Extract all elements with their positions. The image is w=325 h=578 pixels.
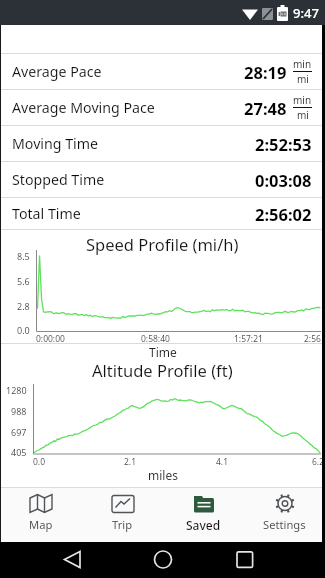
button[interactable] [109,542,217,578]
staticText: 4.1 [216,456,229,468]
staticText: 27:48 [244,97,287,119]
staticText: 2:56:02 [255,203,312,225]
staticText: Time [149,344,177,357]
staticText: 2:56 [304,333,321,345]
staticText: 8.5 [17,250,30,262]
staticText: 0:58:40 [141,333,170,345]
staticText: Moving Time [12,134,99,153]
staticText: 988 [11,405,27,417]
button[interactable]: Moving Time [0,126,325,161]
staticText: Map [29,517,53,532]
staticText: 5.6 [17,275,30,287]
staticText: Average Pace [12,62,102,81]
staticText: 0.0 [17,324,30,336]
button[interactable]: Settings [244,488,325,542]
staticText: Trip [112,517,133,532]
staticText: Speed Profile (mi/h) [86,233,239,255]
button[interactable]: Average Moving Pace [0,90,325,125]
staticText: mi [297,72,309,86]
button[interactable] [0,542,109,578]
button[interactable]: Average Pace [0,54,325,89]
button[interactable]: Map [0,488,82,542]
staticText: 6.2 [312,456,325,468]
staticText: 405 [11,446,27,458]
staticText: 1:57:21 [234,333,263,345]
staticText: 2.8 [17,300,30,312]
button[interactable]: Saved [163,488,244,542]
staticText: Altitude Profile (ft) [92,359,233,381]
staticText: 2.1 [124,456,137,468]
staticText: 2:52:53 [255,133,312,155]
button[interactable] [217,542,325,578]
staticText: 1280 [6,384,27,396]
button[interactable]: Stopped Time [0,162,325,197]
button[interactable]: Total Time [0,198,325,229]
staticText: 697 [11,426,27,438]
button[interactable]: Altitude Profile (ft) [0,357,325,487]
staticText: 9:47 [293,4,319,22]
staticText: Average Moving Pace [12,98,155,117]
staticText: mi [297,108,309,122]
staticText: min [293,57,312,71]
staticText: 0.0 [33,456,46,468]
staticText: Settings [263,517,306,532]
staticText: 0:03:08 [255,169,312,191]
staticText: miles [148,467,178,483]
staticText: 0:00:00 [36,333,65,345]
button[interactable]: Speed Profile (mi/h) [0,230,325,343]
staticText: Stopped Time [12,170,105,189]
staticText: Total Time [12,204,81,223]
staticText: Saved [186,517,221,533]
staticText: min [293,93,312,107]
staticText: 28:19 [244,61,287,83]
button[interactable]: Trip [82,488,163,542]
